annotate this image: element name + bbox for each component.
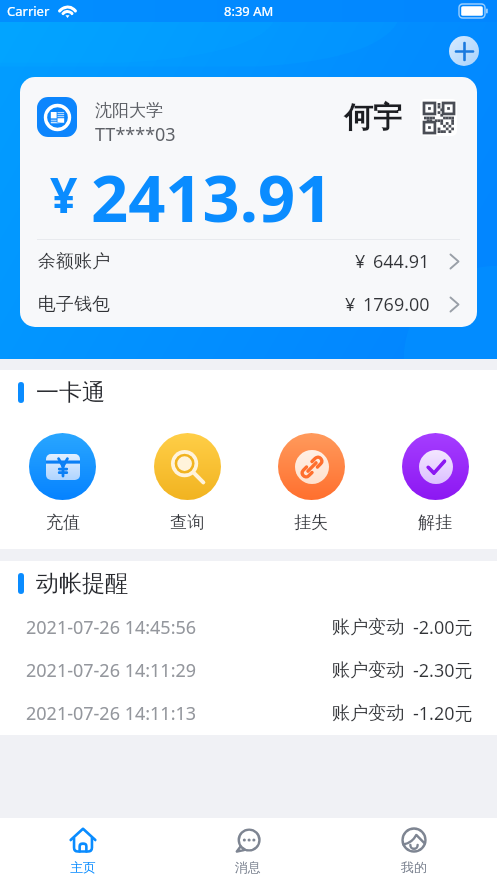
button[interactable]: 消息 (165, 818, 331, 883)
staticText: -1.20元 (413, 701, 473, 726)
staticText: 何宇 (344, 99, 402, 136)
staticText: Carrier (7, 2, 50, 20)
staticText: 余额账户 (38, 250, 110, 273)
staticText: 2021-07-26 14:45:56 (26, 615, 197, 640)
button[interactable]: 解挂 (373, 433, 497, 533)
staticText: 主页 (70, 859, 96, 875)
button[interactable]: QR code (420, 99, 457, 136)
staticText: 8:39 AM (224, 2, 274, 20)
staticText: -2.30元 (413, 658, 473, 683)
button[interactable]: 电子钱包 (20, 283, 477, 326)
button[interactable]: Add (449, 36, 479, 66)
staticText: ¥ (345, 292, 356, 317)
staticText: 账户变动 (332, 702, 404, 725)
staticText: 账户变动 (332, 616, 404, 639)
staticText: 消息 (235, 859, 261, 875)
staticText: 账户变动 (332, 659, 404, 682)
button[interactable]: 充值 (0, 433, 125, 533)
staticText: ¥ (50, 162, 78, 227)
button[interactable]: 我的 (331, 818, 497, 883)
button[interactable]: 2021-07-26 14:11:13 (0, 692, 497, 735)
button[interactable]: 2021-07-26 14:45:56 (0, 606, 497, 649)
staticText: 一卡通 (36, 378, 105, 407)
button[interactable]: 查询 (125, 433, 249, 533)
staticText: 2021-07-26 14:11:13 (26, 701, 197, 726)
staticText: 我的 (401, 859, 427, 875)
staticText: 电子钱包 (38, 293, 110, 316)
staticText: 644.91 (373, 249, 430, 274)
staticText: 挂失 (294, 512, 328, 533)
button[interactable]: 挂失 (249, 433, 373, 533)
button[interactable]: 主页 (0, 818, 165, 883)
staticText: -2.00元 (413, 615, 473, 640)
button[interactable]: 2021-07-26 14:11:29 (0, 649, 497, 692)
staticText: 2413.91 (91, 153, 333, 235)
staticText: 查询 (170, 512, 204, 533)
staticText: 充值 (46, 512, 80, 533)
staticText: 解挂 (418, 512, 452, 533)
staticText: ¥ (355, 249, 366, 274)
staticText: 1769.00 (363, 292, 430, 317)
button[interactable]: 余额账户 (20, 240, 477, 283)
staticText: TT****03 (95, 122, 176, 147)
staticText: 沈阳大学 (95, 100, 163, 121)
staticText: 2021-07-26 14:11:29 (26, 658, 197, 683)
staticText: 动帐提醒 (36, 569, 128, 598)
